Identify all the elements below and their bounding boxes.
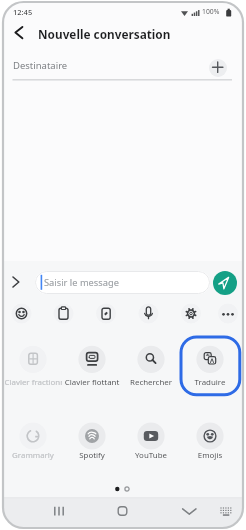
staticText: 12:45: [13, 7, 33, 17]
button[interactable]: [122, 416, 180, 466]
button[interactable]: [218, 303, 239, 324]
staticText: YouTube: [122, 450, 180, 461]
button[interactable]: [105, 498, 141, 524]
staticText: Traduire: [181, 377, 239, 388]
button[interactable]: Saisir le message: [35, 271, 210, 294]
button[interactable]: [41, 498, 77, 524]
staticText: 100%: [202, 7, 220, 16]
button[interactable]: [11, 303, 32, 324]
button[interactable]: [181, 303, 202, 324]
staticText: Clavier fractionné: [4, 377, 62, 388]
button[interactable]: [96, 303, 117, 324]
button[interactable]: [63, 416, 121, 466]
button[interactable]: [4, 340, 62, 390]
staticText: Rechercher: [122, 377, 180, 388]
button[interactable]: [171, 498, 207, 524]
button[interactable]: [181, 340, 239, 390]
button[interactable]: [209, 59, 227, 77]
staticText: Clavier flottant: [63, 377, 121, 388]
button[interactable]: [138, 303, 159, 324]
staticText: Nouvelle conversation: [38, 26, 171, 42]
button[interactable]: [213, 271, 237, 295]
staticText: Emojis: [181, 450, 239, 461]
button[interactable]: [4, 416, 62, 466]
staticText: Destinataire: [13, 59, 68, 72]
staticText: Spotify: [63, 450, 121, 461]
button[interactable]: [181, 416, 239, 466]
button[interactable]: [214, 500, 238, 524]
button[interactable]: [63, 340, 121, 390]
button[interactable]: [53, 303, 74, 324]
button[interactable]: [8, 21, 30, 43]
button[interactable]: [122, 340, 180, 390]
button[interactable]: [6, 269, 24, 295]
staticText: Grammarly: [4, 450, 62, 461]
staticText: Saisir le message: [44, 276, 119, 289]
